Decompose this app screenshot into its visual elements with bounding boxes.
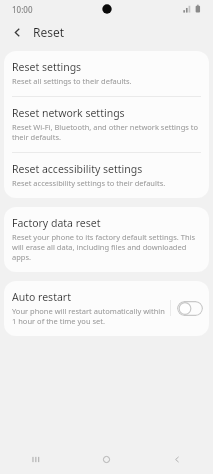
button[interactable]: Reset settings — [4, 51, 209, 96]
button[interactable]: Reset accessibility settings — [4, 153, 209, 198]
staticText: Reset settings — [12, 60, 82, 74]
staticText: Reset network settings — [12, 106, 125, 120]
staticText: Your phone will restart automatically wi… — [12, 306, 166, 326]
button[interactable]: Reset network settings — [4, 97, 209, 152]
button[interactable]: Back — [5, 20, 29, 44]
staticText: Reset accessibility settings — [12, 162, 143, 176]
button[interactable]: Auto restart — [4, 281, 209, 336]
staticText: Reset accessibility settings to their de… — [12, 178, 166, 188]
staticText: Factory data reset — [12, 216, 101, 230]
staticText: Reset Wi-Fi, Bluetooth, and other networ… — [12, 122, 199, 142]
button[interactable]: Factory data reset — [4, 207, 209, 272]
staticText: 10:00 — [12, 4, 33, 15]
button[interactable]: Auto restart toggle, off — [177, 301, 203, 316]
button[interactable]: Recent apps — [0, 444, 71, 474]
staticText: Auto restart — [12, 290, 71, 304]
staticText: Reset all settings to their defaults. — [12, 76, 132, 86]
staticText: Reset your phone to its factory default … — [12, 232, 199, 262]
staticText: Reset — [33, 24, 65, 40]
button[interactable]: Home — [71, 444, 142, 474]
